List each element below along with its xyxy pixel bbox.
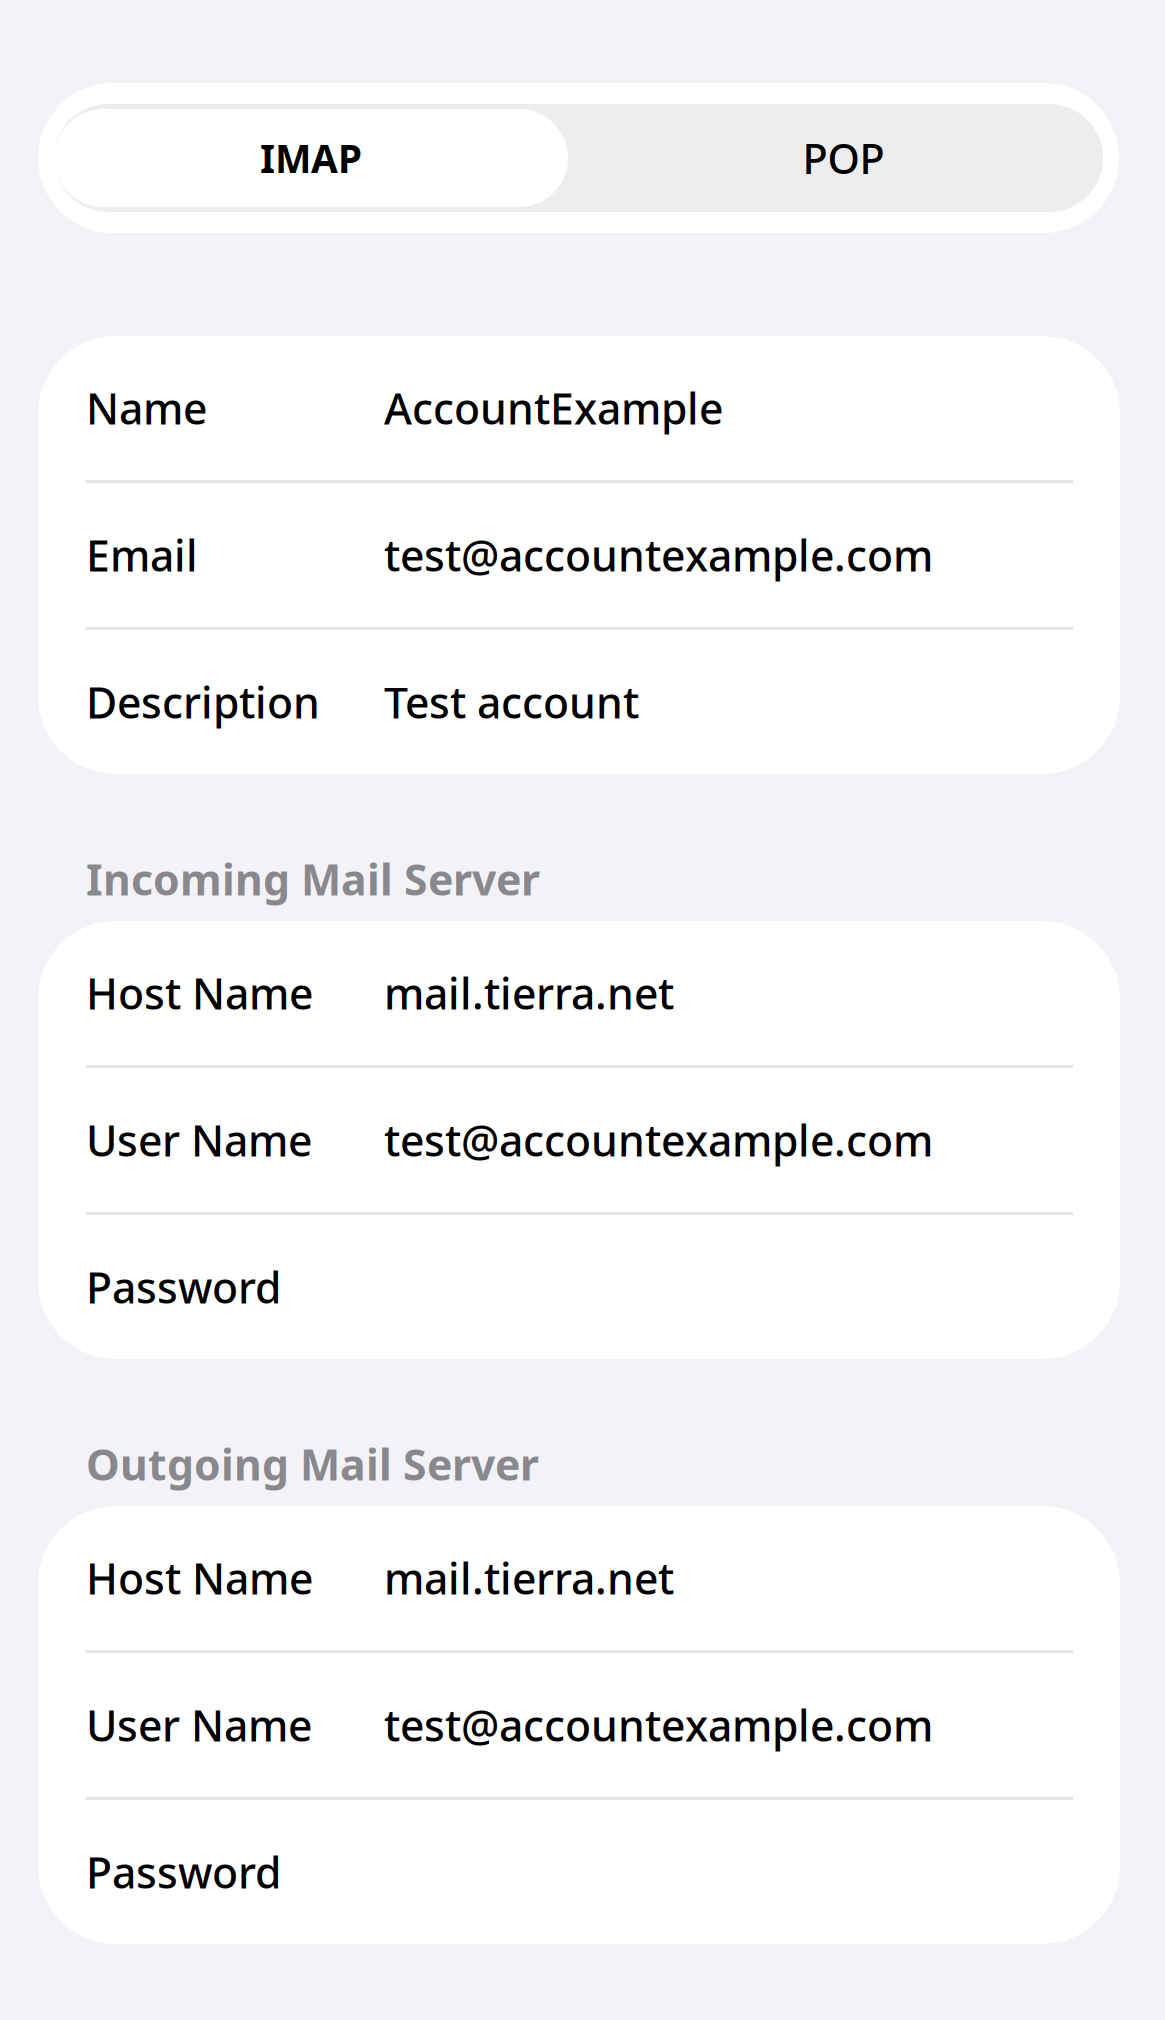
staticText: Host Name: [86, 965, 313, 1021]
staticText: Email: [86, 527, 198, 583]
staticText: Password: [86, 1844, 281, 1900]
button[interactable]: Name: [38, 336, 1120, 480]
button[interactable]: User Name: [38, 1068, 1120, 1212]
button[interactable]: Password: [38, 1800, 1120, 1944]
button[interactable]: Description: [38, 630, 1120, 774]
staticText: test@accountexample.com: [384, 1112, 933, 1168]
staticText: User Name: [86, 1697, 312, 1753]
staticText: test@accountexample.com: [384, 1697, 933, 1753]
staticText: AccountExample: [384, 380, 723, 436]
staticText: Password: [86, 1259, 281, 1315]
staticText: User Name: [86, 1112, 312, 1168]
staticText: IMAP: [260, 132, 362, 184]
button[interactable]: Password: [38, 1215, 1120, 1359]
staticText: test@accountexample.com: [384, 527, 933, 583]
button[interactable]: Host Name: [38, 921, 1120, 1065]
staticText: Test account: [384, 674, 639, 730]
staticText: Incoming Mail Server: [86, 851, 540, 907]
staticText: Outgoing Mail Server: [86, 1436, 539, 1492]
button[interactable]: Host Name: [38, 1506, 1120, 1650]
staticText: Name: [86, 380, 207, 436]
button[interactable]: IMAP: [50, 104, 568, 212]
staticText: POP: [802, 131, 884, 185]
staticText: mail.tierra.net: [384, 1550, 674, 1606]
staticText: mail.tierra.net: [384, 965, 674, 1021]
button[interactable]: User Name: [38, 1653, 1120, 1797]
staticText: Host Name: [86, 1550, 313, 1606]
button[interactable]: Email: [38, 483, 1120, 627]
staticText: Description: [86, 674, 320, 730]
button[interactable]: POP: [568, 104, 1107, 212]
